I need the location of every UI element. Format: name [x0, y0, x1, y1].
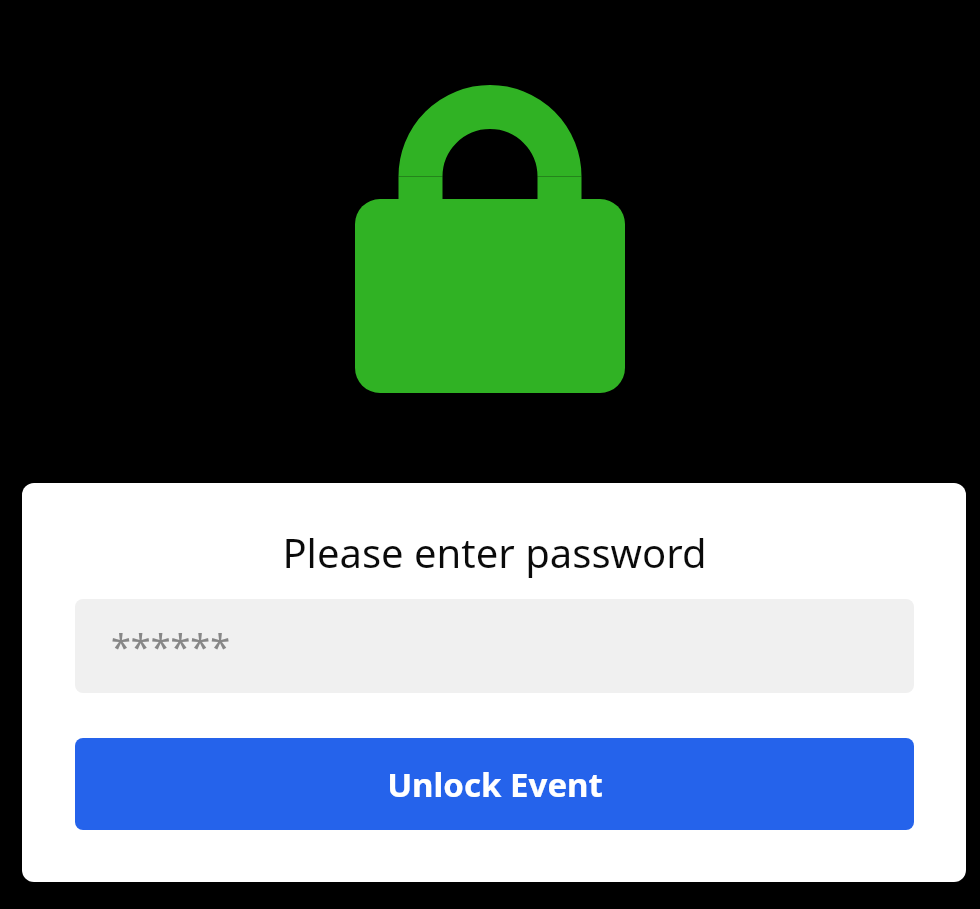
staticText: Unlock Event: [387, 762, 603, 807]
button[interactable]: Password field: [75, 599, 914, 693]
button[interactable]: Unlock Event: [75, 738, 914, 830]
staticText: ******: [111, 622, 231, 671]
staticText: Please enter password: [282, 525, 707, 579]
other: Locked: [355, 85, 625, 393]
